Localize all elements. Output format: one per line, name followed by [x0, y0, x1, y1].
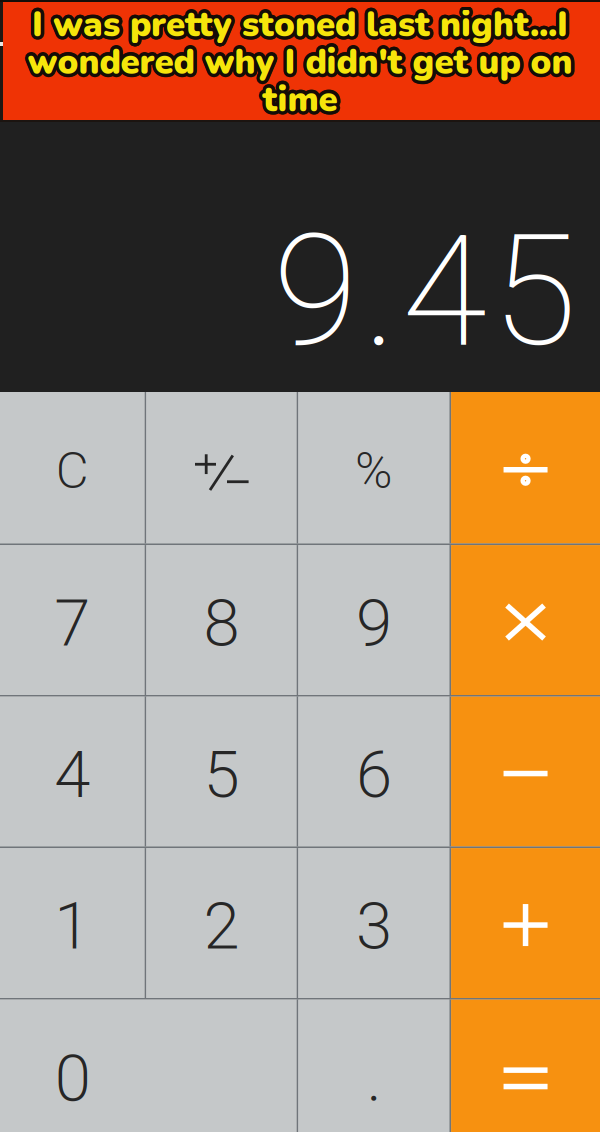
staticText: time: [266, 78, 341, 125]
staticText: C: [56, 441, 89, 500]
staticText: I was pretty stoned last night...I: [35, 0, 571, 47]
staticText: I was pretty stoned last night...I: [29, 3, 565, 50]
staticText: time: [264, 79, 339, 126]
staticText: wondered why I didn't get up on: [27, 39, 572, 86]
button[interactable]: .: [298, 1000, 449, 1132]
staticText: wondered why I didn't get up on: [29, 35, 574, 83]
staticText: wondered why I didn't get up on: [31, 37, 576, 84]
staticText: time: [259, 78, 334, 125]
staticText: 7: [54, 585, 90, 661]
staticText: I was pretty stoned last night...I: [34, 0, 570, 45]
staticText: I was pretty stoned last night...I: [32, 0, 568, 45]
staticText: wondered why I didn't get up on: [31, 39, 576, 86]
button[interactable]: 5: [146, 697, 297, 846]
button[interactable]: Multiply: [451, 545, 600, 695]
staticText: 3: [356, 888, 392, 964]
button[interactable]: 3: [298, 848, 449, 998]
staticText: 6: [356, 736, 392, 813]
button[interactable]: 6: [298, 697, 449, 846]
staticText: time: [261, 73, 336, 120]
staticText: I was pretty stoned last night...I: [32, 5, 568, 52]
staticText: 8: [203, 585, 239, 661]
staticText: wondered why I didn't get up on: [24, 39, 569, 86]
staticText: wondered why I didn't get up on: [24, 37, 569, 84]
staticText: wondered why I didn't get up on: [31, 40, 576, 88]
staticText: I was pretty stoned last night...I: [29, 0, 565, 47]
button[interactable]: 7: [0, 545, 145, 695]
staticText: time: [259, 74, 334, 122]
staticText: .: [366, 1040, 381, 1117]
staticText: 0: [55, 1040, 91, 1117]
staticText: time: [262, 76, 337, 123]
button[interactable]: 8: [146, 545, 297, 695]
staticText: time: [262, 80, 337, 127]
staticText: wondered why I didn't get up on: [26, 42, 571, 89]
staticText: I was pretty stoned last night...I: [30, 4, 566, 51]
button[interactable]: Equals: [451, 1000, 600, 1132]
staticText: I was pretty stoned last night...I: [28, 1, 564, 48]
staticText: time: [261, 79, 336, 126]
staticText: 9: [356, 585, 392, 661]
staticText: 1: [54, 888, 90, 964]
staticText: I was pretty stoned last night...I: [30, 0, 566, 45]
button[interactable]: 9: [298, 545, 449, 695]
staticText: wondered why I didn't get up on: [27, 42, 572, 89]
staticText: %: [355, 441, 393, 500]
button[interactable]: Divide: [451, 392, 600, 543]
staticText: time: [266, 76, 341, 123]
button[interactable]: Plus Minus: [146, 392, 297, 543]
button[interactable]: 0: [0, 1000, 297, 1132]
staticText: wondered why I didn't get up on: [24, 40, 569, 88]
staticText: 2: [203, 888, 239, 964]
staticText: I was pretty stoned last night...I: [32, 1, 568, 48]
staticText: wondered why I didn't get up on: [29, 42, 574, 89]
staticText: time: [264, 73, 339, 120]
staticText: I was pretty stoned last night...I: [36, 1, 572, 48]
staticText: 9.45: [273, 201, 577, 382]
button[interactable]: Add: [451, 848, 600, 998]
button[interactable]: Subtract: [451, 697, 600, 846]
staticText: I was pretty stoned last night...I: [34, 4, 570, 51]
staticText: time: [262, 72, 337, 120]
button[interactable]: 4: [0, 697, 145, 846]
staticText: wondered why I didn't get up on: [27, 35, 572, 82]
staticText: time: [259, 76, 334, 123]
button[interactable]: 2: [146, 848, 297, 998]
staticText: wondered why I didn't get up on: [26, 35, 571, 83]
staticText: I was pretty stoned last night...I: [35, 3, 571, 50]
button[interactable]: 1: [0, 848, 145, 998]
staticText: 4: [54, 736, 90, 813]
button[interactable]: C: [0, 392, 145, 543]
staticText: 5: [203, 736, 239, 813]
button[interactable]: %: [298, 392, 449, 543]
staticText: time: [266, 74, 341, 122]
